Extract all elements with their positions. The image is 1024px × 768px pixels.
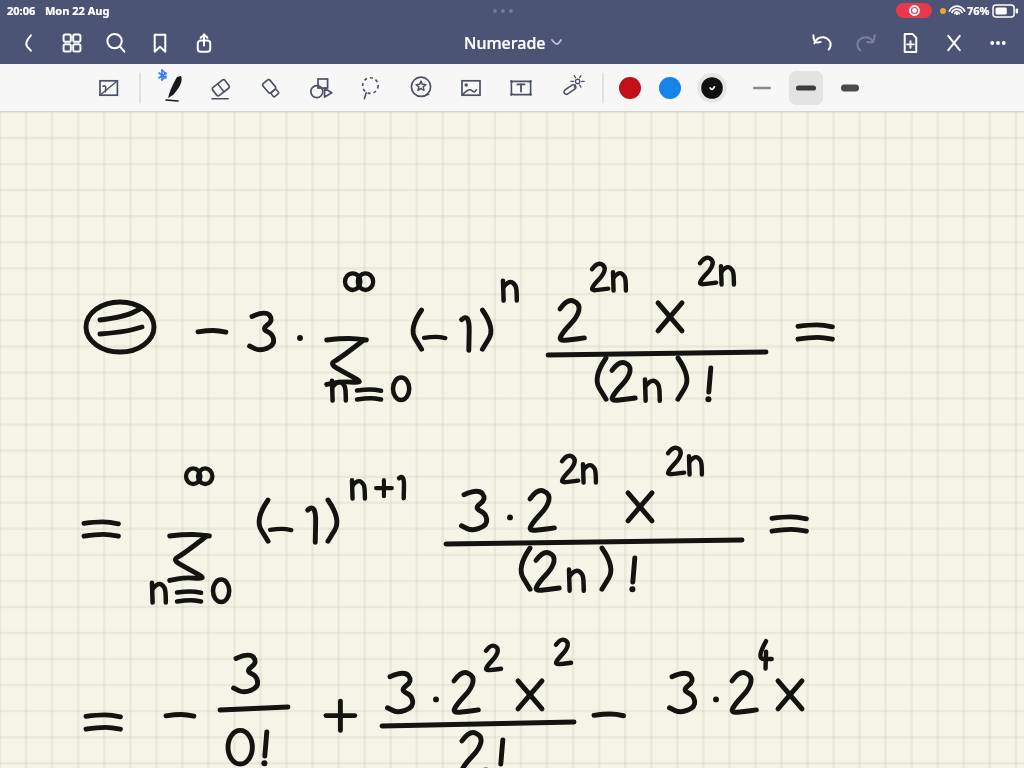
button[interactable]: Black, selected (690, 65, 734, 111)
staticText: 20:06 (7, 3, 36, 18)
button[interactable]: Bookmark (138, 23, 182, 63)
button[interactable]: Lasso (346, 65, 396, 111)
button[interactable]: Highlighter (246, 65, 296, 111)
button[interactable]: Numerade (456, 26, 569, 60)
button[interactable]: Red (610, 65, 650, 111)
button[interactable]: Undo (800, 23, 844, 63)
button[interactable]: Pen (146, 65, 196, 111)
button[interactable]: Text box (496, 65, 546, 111)
button[interactable]: Share (182, 23, 226, 63)
button[interactable]: Layers (84, 65, 134, 111)
button[interactable]: Back (6, 23, 50, 63)
button[interactable]: Thumbnails (50, 23, 94, 63)
button[interactable]: Magic wand (546, 65, 596, 111)
button[interactable]: Redo (844, 23, 888, 63)
staticText: Mon 22 Aug (45, 3, 110, 18)
button[interactable]: More (976, 23, 1020, 63)
button[interactable]: Thin stroke (740, 65, 784, 111)
button[interactable]: Eraser (196, 65, 246, 111)
button[interactable]: Thick stroke (828, 65, 872, 111)
button[interactable]: Shapes (296, 65, 346, 111)
button[interactable]: Search (94, 23, 138, 63)
button[interactable]: Blue (650, 65, 690, 111)
button[interactable]: Medium stroke, selected (784, 65, 828, 111)
staticText: 76% (967, 3, 990, 18)
button[interactable]: Insert image (446, 65, 496, 111)
button[interactable]: Add page (888, 23, 932, 63)
button[interactable]: Close (932, 23, 976, 63)
button[interactable]: Sticker (396, 65, 446, 111)
staticText: Numerade (464, 32, 546, 54)
